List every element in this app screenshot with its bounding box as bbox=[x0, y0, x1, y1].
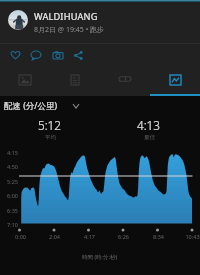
button[interactable]: Profile photo bbox=[8, 10, 28, 30]
staticText: 5:25 bbox=[7, 178, 18, 185]
staticText: 7:10 bbox=[7, 221, 18, 228]
button[interactable]: Comment bbox=[26, 45, 46, 65]
button[interactable]: Details bbox=[50, 66, 100, 96]
button[interactable]: Photos bbox=[0, 66, 50, 96]
staticText: 6:26 bbox=[118, 233, 129, 240]
staticText: 4:13 bbox=[137, 117, 161, 133]
button[interactable]: 配速 (分/公里) bbox=[4, 99, 79, 113]
button[interactable]: Share bbox=[68, 45, 88, 65]
button[interactable]: Like bbox=[5, 45, 25, 65]
staticText: 6:00 bbox=[7, 192, 18, 199]
staticText: 10:43 bbox=[185, 233, 200, 240]
staticText: 平均 bbox=[45, 134, 56, 141]
button[interactable]: Profile photo bbox=[8, 10, 105, 35]
staticText: 8月2日 @ 19:45 • 跑步 bbox=[34, 25, 105, 35]
staticText: 4:50 bbox=[7, 163, 18, 170]
staticText: 配速 (分/公里) bbox=[4, 100, 57, 112]
button[interactable]: Laps bbox=[100, 66, 150, 96]
staticText: 0:00 bbox=[15, 233, 26, 240]
staticText: 4:17 bbox=[84, 233, 95, 240]
staticText: 5:12 bbox=[38, 117, 62, 133]
button[interactable]: Photos bbox=[48, 45, 68, 65]
staticText: 最佳 bbox=[144, 134, 155, 141]
staticText: 8:34 bbox=[153, 233, 164, 240]
staticText: 2:04 bbox=[49, 233, 60, 240]
staticText: 4:15 bbox=[7, 149, 18, 156]
staticText: 6:35 bbox=[7, 207, 18, 214]
button[interactable]: Charts bbox=[150, 66, 200, 96]
staticText: WALDIHUANG bbox=[34, 10, 98, 23]
staticText: 時間 (時:分:秒) bbox=[82, 253, 118, 261]
